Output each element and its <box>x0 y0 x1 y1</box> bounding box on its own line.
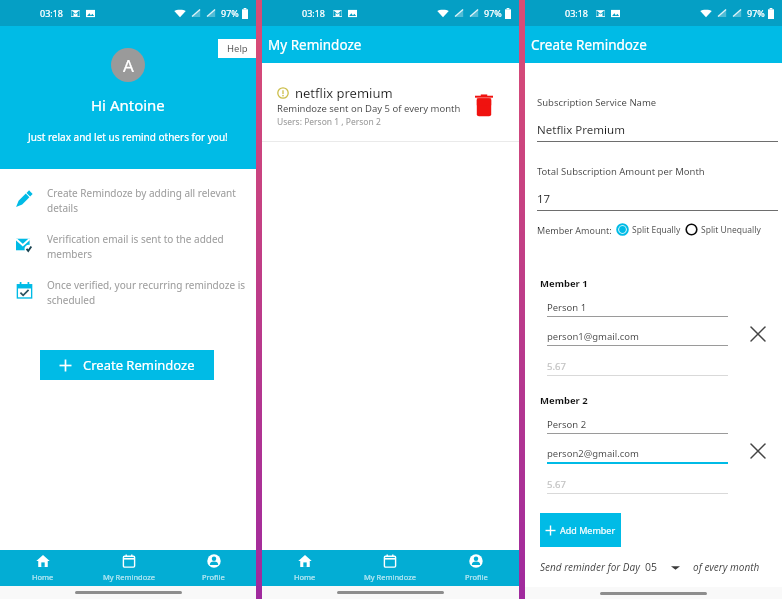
button[interactable]: Split Equally <box>616 223 681 236</box>
staticText: My Remindoze <box>103 572 155 582</box>
button[interactable]: Split Unequally <box>685 223 761 236</box>
staticText: Split Equally <box>632 224 681 236</box>
staticText: netflix premium <box>295 84 393 102</box>
staticText: My Remindoze <box>268 36 362 54</box>
button[interactable]: Home <box>262 550 347 586</box>
staticText: 97% <box>747 7 765 19</box>
staticText: Just relax and let us remind others for … <box>28 130 228 144</box>
staticText: of every month <box>693 560 760 574</box>
button[interactable]: Create Remindoze <box>40 350 214 380</box>
button[interactable]: Profile <box>433 550 519 586</box>
staticText: Send reminder for Day <box>540 560 640 574</box>
staticText: Person 1 <box>547 301 587 314</box>
button[interactable]: Remove member <box>747 323 769 345</box>
staticText: 97% <box>221 7 239 19</box>
staticText: Profile <box>465 572 488 582</box>
staticText: Member Amount: <box>537 224 612 236</box>
button[interactable]: My Remindoze <box>86 550 171 586</box>
staticText: Once verified, your recurring remindoze … <box>47 278 250 307</box>
staticText: Create Remindoze <box>83 356 195 374</box>
button[interactable]: netflix premium <box>262 66 519 141</box>
staticText: Hi Antoine <box>91 95 165 115</box>
button[interactable]: Add Member <box>540 513 621 547</box>
staticText: Create Remindoze by adding all relevant … <box>47 186 250 215</box>
staticText: 5.67 <box>547 360 566 373</box>
staticText: 97% <box>484 7 502 19</box>
button[interactable]: Profile <box>171 550 256 586</box>
staticText: A <box>123 54 134 77</box>
staticText: person1@gmail.com <box>547 330 639 343</box>
staticText: 03:18 <box>40 7 64 19</box>
button[interactable]: Delete <box>471 93 496 118</box>
staticText: Subscription Service Name <box>537 96 657 109</box>
staticText: Netflix Premium <box>537 122 625 138</box>
staticText: 5.67 <box>547 478 566 491</box>
staticText: Create Remindoze <box>531 36 647 54</box>
staticText: Split Unequally <box>701 224 761 236</box>
staticText: Home <box>294 572 316 582</box>
staticText: Total Subscription Amount per Month <box>537 165 705 178</box>
staticText: Member 2 <box>540 394 588 407</box>
staticText: 17 <box>537 191 551 207</box>
staticText: Verification email is sent to the added … <box>47 232 250 261</box>
button[interactable]: My Remindoze <box>347 550 433 586</box>
staticText: person2@gmail.com <box>547 447 639 460</box>
button[interactable]: Remove member <box>747 440 769 462</box>
staticText: Remindoze sent on Day 5 of every month <box>277 102 461 115</box>
staticText: 05 <box>645 560 658 574</box>
staticText: Add Member <box>560 524 616 536</box>
staticText: 03:18 <box>565 7 589 19</box>
staticText: Help <box>227 42 248 55</box>
staticText: Person 2 <box>547 418 587 431</box>
staticText: My Remindoze <box>364 572 416 582</box>
staticText: Users: Person 1 , Person 2 <box>277 116 381 128</box>
staticText: Member 1 <box>540 277 588 290</box>
staticText: 03:18 <box>302 7 326 19</box>
staticText: Profile <box>202 572 225 582</box>
button[interactable]: Home <box>0 550 86 586</box>
button[interactable]: Help <box>218 39 256 58</box>
staticText: Home <box>32 572 54 582</box>
